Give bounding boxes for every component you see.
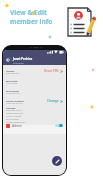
staticText: Phone Number	[6, 99, 24, 102]
staticText: Names	[6, 69, 15, 72]
staticText: Revenue South	[6, 109, 22, 112]
staticText: ID Number	[6, 89, 20, 92]
staticText: Listings:	[6, 106, 16, 109]
staticText: Reset PIN	[44, 69, 59, 73]
staticText: Airbnb Recharge	[6, 112, 24, 115]
staticText: member info	[10, 17, 53, 26]
staticText: Birthdate	[6, 79, 18, 82]
staticText: Admin	[12, 124, 22, 128]
staticText: 12/10/1985	[6, 82, 18, 85]
staticText: Village Governance	[6, 121, 26, 124]
staticText: Customer	[13, 61, 25, 64]
staticText: Change	[47, 99, 59, 103]
button[interactable]	[55, 124, 63, 127]
staticText: 11XXXXXXXXX	[6, 92, 21, 95]
button[interactable]: Back	[3, 55, 13, 65]
button[interactable]: Reset PIN	[44, 69, 63, 73]
staticText: Janet Perkins	[6, 72, 20, 75]
button[interactable]: Admin	[6, 121, 63, 130]
button[interactable]: Edit	[52, 156, 62, 166]
staticText: Gift Package	[6, 118, 19, 121]
staticText: Sector Chelsea	[6, 115, 22, 118]
staticText: View & Edit	[10, 8, 47, 17]
staticText: Janet Perkins	[13, 57, 33, 61]
button[interactable]: Change	[47, 99, 63, 103]
staticText: +255 700 XX 123	[6, 102, 23, 105]
